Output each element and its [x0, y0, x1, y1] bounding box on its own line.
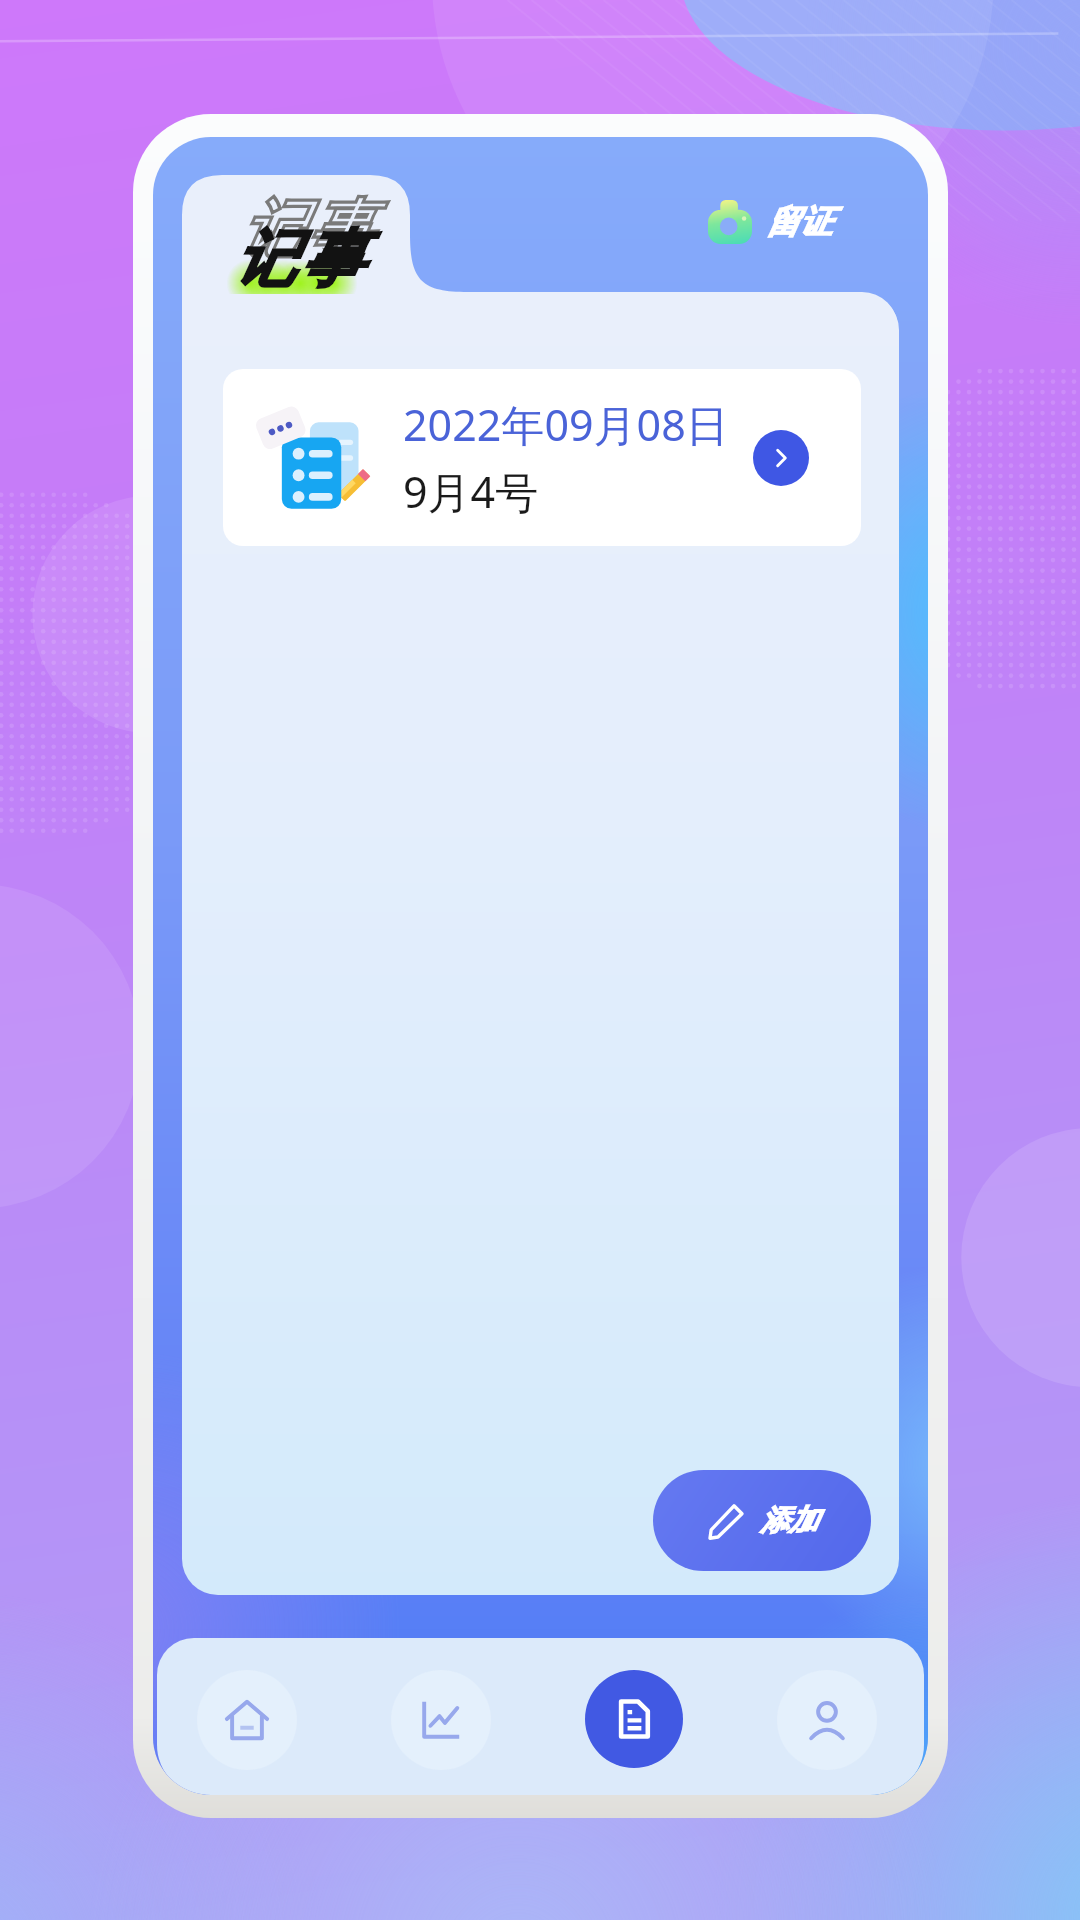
staticText: 记事: [231, 220, 365, 298]
button[interactable]: 2022年09月08日: [223, 369, 861, 546]
button[interactable]: 留证 Capture evidence: [696, 190, 844, 254]
button[interactable]: Statistics: [391, 1670, 491, 1770]
button[interactable]: Open note: [753, 430, 809, 486]
staticText: 添加: [760, 1502, 818, 1539]
staticText: 2022年09月08日: [403, 395, 729, 454]
button[interactable]: Notes: [585, 1670, 683, 1768]
button[interactable]: Home: [197, 1670, 297, 1770]
staticText: 9月4号: [403, 462, 539, 521]
button[interactable]: Profile: [777, 1670, 877, 1770]
staticText: 留证: [766, 201, 832, 243]
button[interactable]: 添加 Add note: [653, 1470, 871, 1571]
staticText: 记事: [238, 190, 372, 268]
